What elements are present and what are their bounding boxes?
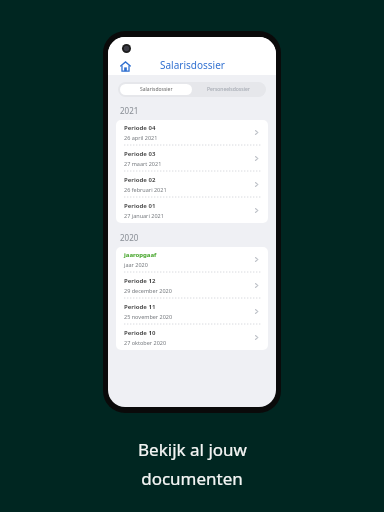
staticText: 26 april 2021 — [124, 134, 158, 141]
staticText: Personeelsdossier — [207, 86, 250, 93]
button[interactable]: jaaropgaaf — [116, 247, 268, 272]
staticText: 27 januari 2021 — [124, 212, 164, 219]
staticText: Periode 11 — [124, 303, 156, 311]
staticText: Salarisdossier — [140, 86, 173, 93]
button[interactable]: Periode 04 — [116, 120, 268, 145]
staticText: Periode 03 — [124, 150, 156, 158]
button[interactable]: Periode 01 — [116, 198, 268, 223]
staticText: documenten — [141, 467, 243, 490]
staticText: 2021 — [120, 105, 139, 116]
staticText: Periode 12 — [124, 277, 156, 285]
button[interactable]: Salarisdossier — [120, 84, 192, 95]
button[interactable]: Personeelsdossier — [192, 84, 264, 95]
staticText: jaaropgaaf — [124, 251, 157, 259]
staticText: Periode 01 — [124, 202, 156, 210]
button[interactable]: Periode 03 — [116, 146, 268, 171]
button[interactable]: Periode 11 — [116, 299, 268, 324]
staticText: 2020 — [120, 232, 139, 243]
staticText: jaar 2020 — [124, 261, 148, 268]
staticText: 26 februari 2021 — [124, 186, 167, 193]
button[interactable]: Periode 02 — [116, 172, 268, 197]
staticText: 29 december 2020 — [124, 287, 172, 294]
staticText: 27 oktober 2020 — [124, 339, 167, 346]
staticText: Salarisdossier — [160, 58, 225, 72]
staticText: 27 maart 2021 — [124, 160, 162, 167]
staticText: Bekijk al jouw — [138, 438, 247, 461]
button[interactable]: Home — [116, 57, 134, 75]
staticText: Periode 10 — [124, 329, 156, 337]
button[interactable]: Periode 10 — [116, 325, 268, 350]
staticText: 25 november 2020 — [124, 313, 173, 320]
staticText: Periode 04 — [124, 124, 156, 132]
button[interactable]: Periode 12 — [116, 273, 268, 298]
staticText: Periode 02 — [124, 176, 156, 184]
